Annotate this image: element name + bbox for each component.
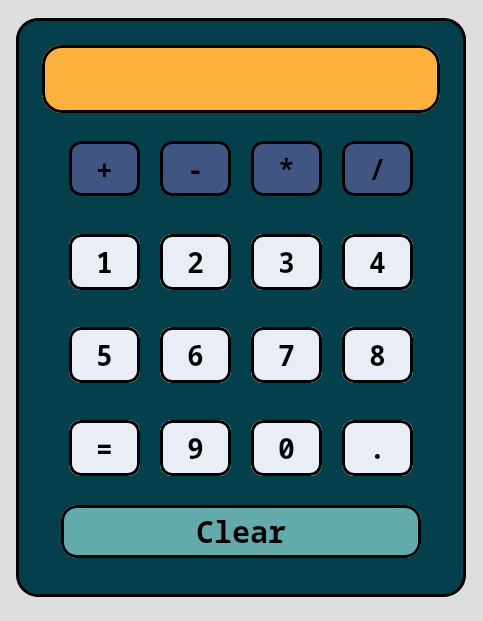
button[interactable]: . xyxy=(342,420,413,476)
staticText: 8 xyxy=(369,336,386,374)
staticText: 5 xyxy=(96,336,113,374)
staticText: 4 xyxy=(369,243,386,281)
staticText: 1 xyxy=(96,243,113,281)
staticText: 7 xyxy=(278,336,295,374)
button[interactable]: 2 xyxy=(160,234,231,290)
staticText: 3 xyxy=(278,243,295,281)
button[interactable]: = xyxy=(69,420,140,476)
button[interactable]: 9 xyxy=(160,420,231,476)
button[interactable]: 7 xyxy=(251,327,322,383)
staticText: 6 xyxy=(187,336,204,374)
button[interactable]: 8 xyxy=(342,327,413,383)
button[interactable]: 4 xyxy=(342,234,413,290)
button[interactable]: / xyxy=(342,141,413,196)
button[interactable]: 6 xyxy=(160,327,231,383)
button[interactable]: * xyxy=(251,141,322,196)
staticText: * xyxy=(278,150,295,188)
button[interactable]: 3 xyxy=(251,234,322,290)
button[interactable]: 1 xyxy=(69,234,140,290)
button[interactable]: Clear xyxy=(61,505,421,558)
button[interactable]: 0 xyxy=(251,420,322,476)
button[interactable]: + xyxy=(69,141,140,196)
staticText: / xyxy=(369,150,386,188)
staticText: . xyxy=(369,429,386,467)
staticText: 0 xyxy=(278,429,295,467)
staticText: 2 xyxy=(187,243,204,281)
staticText: = xyxy=(96,429,113,467)
other: Display xyxy=(42,45,440,113)
staticText: + xyxy=(96,150,113,188)
staticText: Clear xyxy=(196,511,286,552)
button[interactable]: - xyxy=(160,141,231,196)
staticText: 9 xyxy=(187,429,204,467)
button[interactable]: 5 xyxy=(69,327,140,383)
staticText: - xyxy=(187,150,204,188)
